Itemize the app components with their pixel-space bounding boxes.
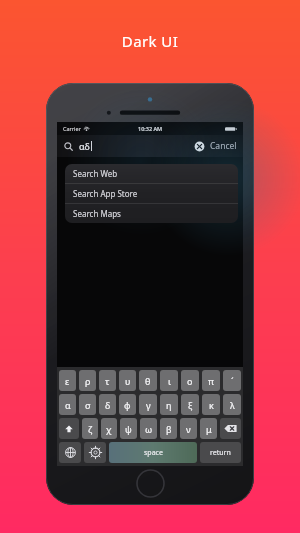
staticText: π (208, 375, 214, 387)
staticText: σ (85, 399, 91, 411)
button[interactable]: ε (59, 370, 76, 391)
button[interactable]: π (202, 370, 220, 391)
button[interactable]: κ (202, 394, 220, 415)
staticText: space (144, 448, 163, 458)
staticText: ι (168, 375, 171, 387)
button[interactable]: ρ (79, 370, 96, 391)
button[interactable]: ξ (181, 394, 199, 415)
staticText: Search App Store (73, 188, 138, 199)
staticText: ´ (231, 375, 234, 387)
staticText: Search Maps (73, 208, 121, 219)
button[interactable]: ζ (82, 418, 98, 439)
staticText: η (166, 399, 172, 411)
button[interactable]: ο (181, 370, 199, 391)
staticText: Cancel (210, 140, 237, 152)
button[interactable]: Home (136, 469, 165, 498)
staticText: ω (145, 423, 153, 435)
button[interactable]: β (160, 418, 177, 439)
other: Search (64, 142, 73, 151)
staticText: Carrier (63, 125, 81, 132)
button[interactable]: Search Maps (65, 204, 238, 223)
staticText: χ (106, 423, 112, 435)
staticText: μ (206, 423, 212, 435)
button[interactable]: ν (180, 418, 197, 439)
button[interactable]: τ (99, 370, 116, 391)
button[interactable]: return (200, 442, 241, 463)
other: Backspace (224, 424, 237, 433)
staticText: γ (146, 399, 151, 411)
button[interactable]: η (160, 394, 178, 415)
button[interactable]: Search App Store (65, 184, 238, 203)
staticText: ξ (188, 399, 193, 411)
staticText: α (65, 399, 71, 411)
staticText: φ (124, 399, 131, 411)
staticText: 10:32 AM (138, 125, 163, 132)
staticText: ψ (125, 423, 132, 435)
other: Keyboard settings (90, 447, 101, 458)
button[interactable]: α (59, 394, 76, 415)
staticText: υ (125, 375, 131, 387)
button[interactable]: Keyboard settings (84, 442, 106, 463)
staticText: τ (105, 375, 110, 387)
button[interactable]: Backspace (220, 418, 241, 439)
staticText: κ (209, 399, 214, 411)
staticText: ζ (88, 423, 93, 435)
button[interactable]: Cancel (209, 140, 238, 152)
staticText: ρ (85, 375, 91, 387)
staticText: return (210, 448, 231, 458)
button[interactable]: σ (79, 394, 96, 415)
button[interactable]: μ (200, 418, 217, 439)
button[interactable]: Search Web (65, 164, 238, 183)
staticText: β (166, 423, 172, 435)
button[interactable]: υ (119, 370, 136, 391)
other: Shift (64, 424, 74, 434)
button[interactable]: space (109, 442, 197, 463)
button[interactable]: φ (119, 394, 136, 415)
button[interactable]: Clear text (194, 141, 205, 152)
staticText: λ (230, 399, 235, 411)
button[interactable]: Search (57, 135, 243, 157)
button[interactable]: θ (139, 370, 157, 391)
button[interactable]: ω (140, 418, 157, 439)
button[interactable]: ψ (120, 418, 137, 439)
button[interactable]: Shift (59, 418, 79, 439)
staticText: ε (65, 375, 70, 387)
button[interactable]: γ (139, 394, 157, 415)
other: Next keyboard (65, 447, 76, 458)
staticText: Dark UI (0, 31, 300, 51)
staticText: Search Web (73, 168, 118, 179)
button[interactable]: χ (101, 418, 117, 439)
button[interactable]: ´ (223, 370, 241, 391)
button[interactable]: Next keyboard (59, 442, 81, 463)
button[interactable]: ι (160, 370, 178, 391)
staticText: ν (186, 423, 191, 435)
staticText: ο (187, 375, 193, 387)
button[interactable]: δ (99, 394, 116, 415)
staticText: αδ (79, 140, 90, 152)
button[interactable]: λ (223, 394, 241, 415)
staticText: θ (145, 375, 151, 387)
staticText: δ (105, 399, 111, 411)
